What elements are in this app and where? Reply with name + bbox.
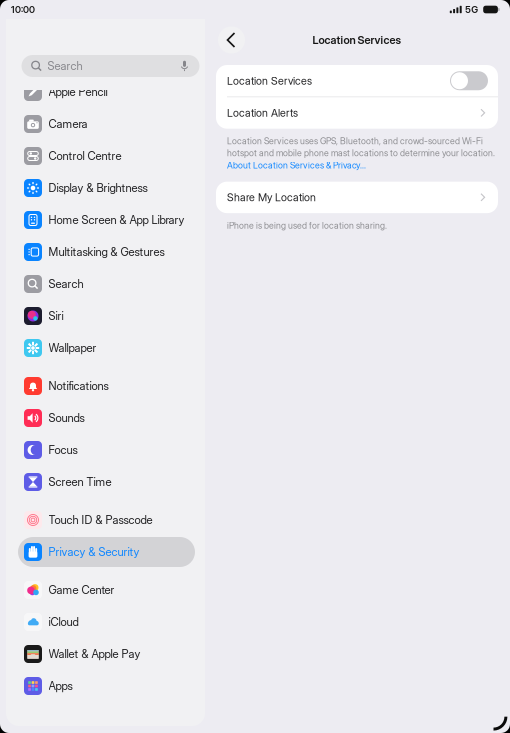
staticText: Location Services <box>312 33 401 47</box>
button[interactable]: Game Center <box>6 574 205 606</box>
staticText: Location Services uses GPS, Bluetooth, a… <box>227 136 483 146</box>
staticText: Camera <box>48 117 87 131</box>
staticText: Location Services <box>227 74 312 87</box>
staticText: Location Alerts <box>227 106 298 119</box>
staticText: Home Screen & App Library <box>48 213 184 227</box>
button[interactable]: Share My Location <box>216 182 498 213</box>
staticText: Wallpaper <box>48 341 96 355</box>
staticText: 5G <box>465 4 478 15</box>
staticText: Wallet & Apple Pay <box>48 647 140 661</box>
staticText: Notifications <box>48 379 108 393</box>
button[interactable]: Control Centre <box>6 140 205 172</box>
button[interactable]: About Location Services & Privacy... <box>227 160 366 171</box>
button[interactable]: Multitasking & Gestures <box>6 236 205 268</box>
button[interactable]: Apps <box>6 670 205 702</box>
staticText: Focus <box>48 443 77 457</box>
staticText: Apple Pencil <box>48 85 107 99</box>
button[interactable]: Notifications <box>6 370 205 402</box>
button[interactable]: Location Alerts <box>216 97 498 129</box>
staticText: Game Center <box>48 583 114 597</box>
staticText: 10:00 <box>11 4 35 15</box>
button[interactable]: Privacy & Security <box>6 536 205 568</box>
staticText: About Location Services & Privacy... <box>227 160 366 171</box>
staticText: Search <box>48 277 83 291</box>
staticText: Sounds <box>48 411 84 425</box>
staticText: Touch ID & Passcode <box>48 513 152 527</box>
button[interactable]: Wallpaper <box>6 332 205 364</box>
staticText: Control Centre <box>48 149 121 163</box>
button[interactable]: Touch ID & Passcode <box>6 504 205 536</box>
staticText: Privacy & Security <box>48 545 139 559</box>
staticText: iPhone is being used for location sharin… <box>227 220 387 231</box>
staticText: Search <box>47 59 82 73</box>
staticText: Multitasking & Gestures <box>48 245 164 259</box>
button[interactable]: Location Services <box>216 65 498 96</box>
staticText: Siri <box>48 309 63 323</box>
staticText: iCloud <box>48 615 78 629</box>
button[interactable]: Search <box>6 268 205 300</box>
staticText: Apps <box>48 679 72 693</box>
button[interactable]: Apple Pencil <box>6 76 205 108</box>
button[interactable]: Camera <box>6 108 205 140</box>
button[interactable]: Back <box>218 26 245 53</box>
button[interactable]: Home Screen & App Library <box>6 204 205 236</box>
button[interactable]: Display & Brightness <box>6 172 205 204</box>
button[interactable]: Screen Time <box>6 466 205 498</box>
button[interactable]: Search <box>21 55 199 77</box>
button[interactable]: Sounds <box>6 402 205 434</box>
button[interactable]: Siri <box>6 300 205 332</box>
staticText: Display & Brightness <box>48 181 147 195</box>
button[interactable]: iCloud <box>6 606 205 638</box>
staticText: Share My Location <box>227 191 316 204</box>
button[interactable]: Wallet & Apple Pay <box>6 638 205 670</box>
staticText: Screen Time <box>48 475 111 489</box>
staticText: hotspot and mobile phone mast locations … <box>227 148 495 158</box>
button[interactable]: Focus <box>6 434 205 466</box>
